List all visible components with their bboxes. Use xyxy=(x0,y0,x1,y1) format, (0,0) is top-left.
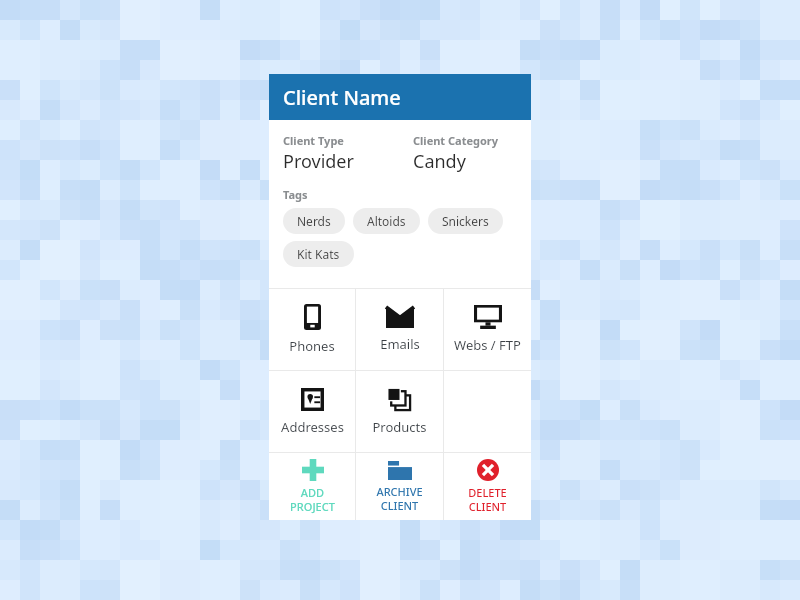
staticText: Provider xyxy=(283,149,354,174)
staticText: ARCHIVE CLIENT xyxy=(376,484,423,513)
button[interactable]: DELETE CLIENT xyxy=(444,453,531,520)
button[interactable]: Phones xyxy=(269,289,355,370)
staticText: Candy xyxy=(413,149,466,174)
button[interactable]: Kit Kats xyxy=(283,241,354,267)
staticText: Altoids xyxy=(367,213,406,229)
button[interactable]: Addresses xyxy=(269,371,355,452)
button[interactable]: Altoids xyxy=(353,208,420,234)
button[interactable]: Nerds xyxy=(283,208,345,234)
staticText: Client Category xyxy=(413,133,498,148)
staticText: Nerds xyxy=(297,213,331,229)
staticText: Client Type xyxy=(283,133,344,148)
button[interactable]: ADD PROJECT xyxy=(269,453,355,520)
staticText: DELETE CLIENT xyxy=(468,485,507,514)
staticText: Kit Kats xyxy=(297,246,340,262)
button[interactable]: Emails xyxy=(356,289,443,370)
staticText: Snickers xyxy=(442,213,489,229)
staticText: Phones xyxy=(289,337,335,355)
staticText: Products xyxy=(372,418,427,436)
button[interactable]: ARCHIVE CLIENT xyxy=(356,453,443,520)
button[interactable]: Client Name xyxy=(269,74,531,120)
staticText: Webs / FTP xyxy=(454,336,521,354)
button[interactable]: Webs / FTP xyxy=(444,289,531,370)
staticText: ADD PROJECT xyxy=(290,485,335,514)
staticText: Addresses xyxy=(281,418,344,436)
button[interactable]: Snickers xyxy=(428,208,503,234)
button[interactable]: Products xyxy=(356,371,443,452)
staticText: Client Name xyxy=(283,84,401,111)
staticText: Tags xyxy=(283,187,308,202)
staticText: Emails xyxy=(380,335,420,353)
